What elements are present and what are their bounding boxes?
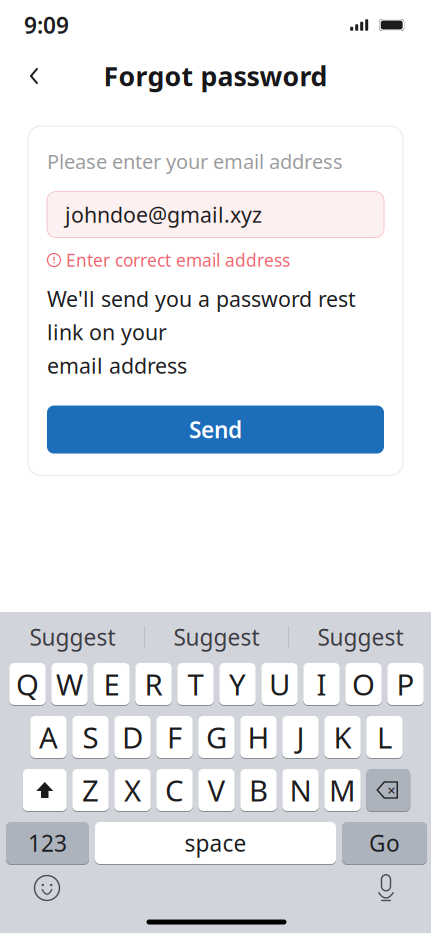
staticText: Suggest — [29, 622, 115, 652]
button[interactable]: B — [240, 768, 277, 812]
staticText: L — [377, 717, 392, 756]
staticText: G — [206, 717, 227, 756]
button[interactable]: X — [114, 768, 151, 812]
button[interactable]: O — [345, 662, 382, 706]
button[interactable]: H — [240, 715, 277, 759]
button[interactable]: C — [156, 768, 193, 812]
staticText: Suggest — [317, 622, 403, 652]
button[interactable]: P — [387, 662, 424, 706]
staticText: Enter correct email address — [66, 249, 290, 272]
button[interactable]: V — [198, 768, 235, 812]
staticText: Suggest — [173, 622, 259, 652]
button[interactable]: Back — [12, 54, 56, 98]
button[interactable]: Dictation — [364, 866, 408, 910]
button[interactable]: S — [72, 715, 109, 759]
staticText: E — [103, 664, 119, 703]
button[interactable]: T — [177, 662, 214, 706]
staticText: × — [387, 780, 395, 800]
staticText: T — [187, 664, 203, 703]
staticText: P — [396, 664, 414, 703]
button[interactable]: W — [51, 662, 88, 706]
staticText: K — [333, 717, 351, 756]
button[interactable]: R — [135, 662, 172, 706]
button[interactable]: G — [198, 715, 235, 759]
staticText: Send — [189, 414, 242, 445]
button[interactable]: F — [156, 715, 193, 759]
button[interactable]: J — [282, 715, 319, 759]
button[interactable]: Q — [9, 662, 46, 706]
button[interactable]: Emoji keyboard — [25, 866, 69, 910]
staticText: U — [269, 664, 290, 703]
staticText: Z — [82, 770, 99, 809]
button[interactable]: Z — [72, 768, 109, 812]
staticText: Y — [229, 664, 246, 703]
staticText: Forgot password — [103, 58, 327, 94]
staticText: Please enter your email address — [47, 148, 343, 175]
button[interactable]: E — [93, 662, 130, 706]
staticText: 9:09 — [24, 10, 69, 40]
staticText: O — [352, 664, 375, 703]
staticText: We'll send you a password rest link on y… — [47, 285, 356, 380]
button[interactable]: Go — [342, 821, 427, 865]
staticText: J — [296, 717, 304, 756]
staticText: space — [184, 828, 246, 858]
button[interactable]: A — [30, 715, 67, 759]
staticText: johndoe@gmail.xyz — [65, 200, 262, 229]
button[interactable]: space — [95, 821, 336, 865]
button[interactable]: I — [303, 662, 340, 706]
button[interactable]: K — [324, 715, 361, 759]
button[interactable]: N — [282, 768, 319, 812]
button[interactable]: M — [324, 768, 361, 812]
button[interactable]: johndoe@gmail.xyz — [47, 192, 384, 238]
button[interactable]: Y — [219, 662, 256, 706]
button[interactable]: D — [114, 715, 151, 759]
staticText: 123 — [28, 828, 67, 858]
button[interactable]: Suggest — [289, 622, 431, 652]
button[interactable]: Suggest — [1, 622, 144, 652]
staticText: M — [329, 770, 356, 809]
staticText: W — [56, 664, 83, 703]
staticText: H — [247, 717, 269, 756]
button[interactable]: L — [366, 715, 403, 759]
staticText: S — [82, 717, 98, 756]
staticText: V — [207, 770, 225, 809]
button[interactable]: Shift — [23, 768, 67, 812]
button[interactable]: U — [261, 662, 298, 706]
staticText: Go — [369, 828, 400, 858]
staticText: B — [249, 770, 268, 809]
staticText: X — [124, 770, 141, 809]
staticText: R — [144, 664, 162, 703]
staticText: Q — [16, 664, 39, 703]
staticText: A — [39, 717, 58, 756]
staticText: D — [122, 717, 143, 756]
staticText: C — [165, 770, 184, 809]
staticText: I — [316, 664, 326, 703]
staticText: N — [289, 770, 311, 809]
button[interactable]: Delete — [366, 768, 410, 812]
button[interactable]: Send — [47, 406, 384, 454]
button[interactable]: Suggest — [145, 622, 288, 652]
button[interactable]: 123 — [6, 821, 89, 865]
staticText: F — [167, 717, 182, 756]
